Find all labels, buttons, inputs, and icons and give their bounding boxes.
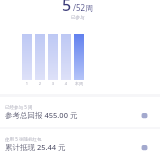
staticText: 5 [62,0,72,16]
staticText: 已经参与 5 周 [5,104,33,110]
staticText: 2 [35,81,45,86]
button[interactable]: 已经参与 5 周 [0,99,160,128]
staticText: 4 [61,81,71,86]
other: Details [141,144,148,151]
staticText: /52周 [73,2,94,13]
staticText: 使用 5 张随机红包 [5,136,42,142]
staticText: 3 [48,81,58,86]
staticText: 本周 [74,81,84,86]
staticText: 参考总回报 455.00 元 [5,110,78,120]
other: Details [141,112,148,119]
staticText: 累计抵现 25.44 元 [5,142,66,152]
staticText: 1 [22,81,32,86]
button[interactable]: 使用 5 张随机红包 [0,131,160,160]
staticText: 已参与 [71,15,85,21]
